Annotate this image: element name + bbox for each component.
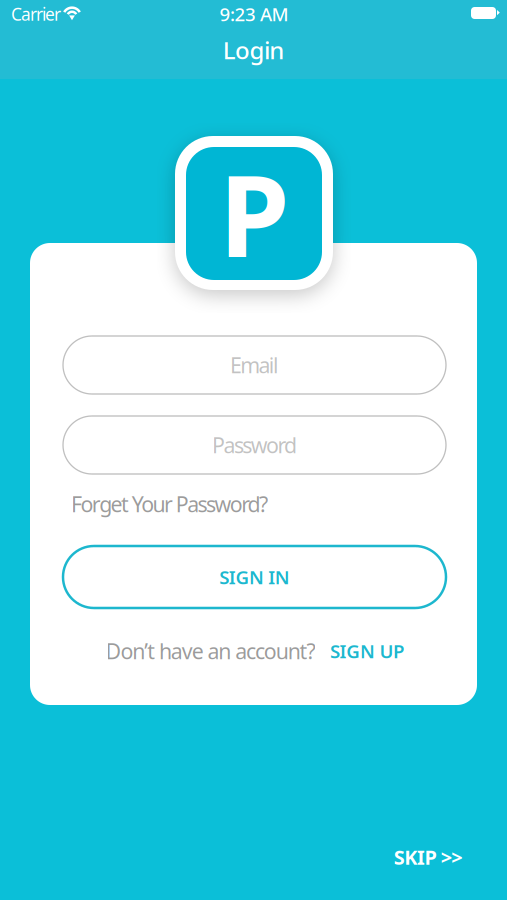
staticText: Don’t have an account? [105, 637, 315, 665]
staticText: SIGN UP [330, 639, 404, 663]
button[interactable]: Forget Your Password? [71, 490, 286, 518]
staticText: P [219, 138, 289, 289]
button[interactable]: Email [63, 336, 446, 394]
button[interactable]: SKIP >> [394, 844, 462, 870]
staticText: Email [230, 351, 279, 379]
button[interactable]: Password [63, 416, 446, 474]
staticText: Carrier [11, 2, 61, 25]
staticText: Password [212, 431, 297, 459]
staticText: SIGN IN [219, 565, 290, 589]
staticText: Login [223, 34, 284, 66]
button[interactable]: SIGN IN [63, 546, 446, 608]
staticText: SKIP >> [394, 844, 462, 870]
staticText: Forget Your Password? [71, 490, 268, 518]
staticText: 9:23 AM [219, 2, 288, 26]
button[interactable]: SIGN UP [330, 639, 412, 663]
